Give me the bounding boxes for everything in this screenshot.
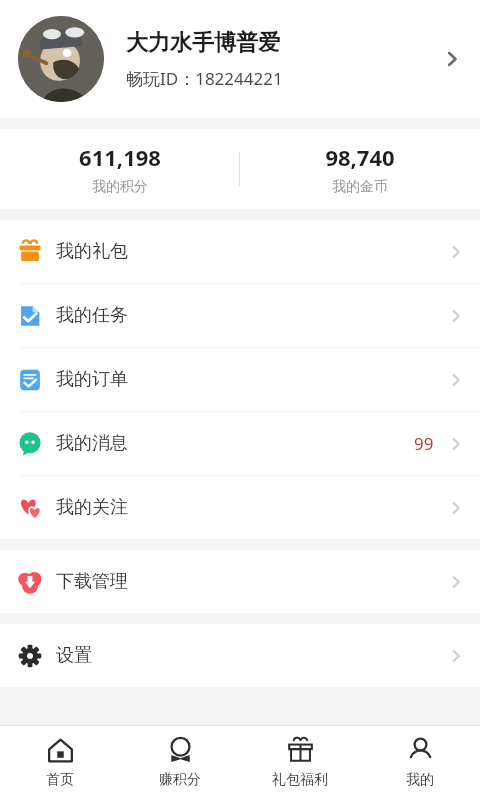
button[interactable]: 我的任务 [0,284,480,347]
button[interactable]: 大力水手博普爱 [0,0,480,118]
staticText: 我的订单 [56,368,128,391]
staticText: 我的金币 [332,178,388,196]
button[interactable]: 98,740 [240,129,480,209]
button[interactable]: 赚积分 [120,726,240,800]
button[interactable]: 611,198 [0,129,239,209]
staticText: 设置 [56,644,92,667]
button[interactable]: 设置 [0,624,480,687]
staticText: 我的任务 [56,304,128,327]
staticText: 赚积分 [159,771,201,789]
button[interactable]: 下载管理 [0,550,480,613]
staticText: 我的积分 [92,178,148,196]
staticText: 611,198 [79,142,161,172]
staticText: 99 [414,432,434,455]
staticText: 我的 [406,771,434,789]
button[interactable]: 我的订单 [0,348,480,411]
staticText: 下载管理 [56,570,128,593]
staticText: 我的关注 [56,496,128,519]
button[interactable]: 我的 [360,726,480,800]
button[interactable]: 我的消息 [0,412,480,475]
staticText: 我的消息 [56,432,128,455]
button[interactable]: 我的关注 [0,476,480,539]
staticText: 首页 [46,771,74,789]
button[interactable]: 我的礼包 [0,220,480,283]
staticText: 98,740 [325,142,395,172]
staticText: 我的礼包 [56,240,128,263]
other: Profile details [439,46,465,72]
staticText: 大力水手博普爱 [126,29,280,57]
staticText: 畅玩ID：182244221 [126,67,283,90]
staticText: 礼包福利 [272,771,328,789]
button[interactable]: 首页 [0,726,120,800]
button[interactable]: 礼包福利 [240,726,360,800]
